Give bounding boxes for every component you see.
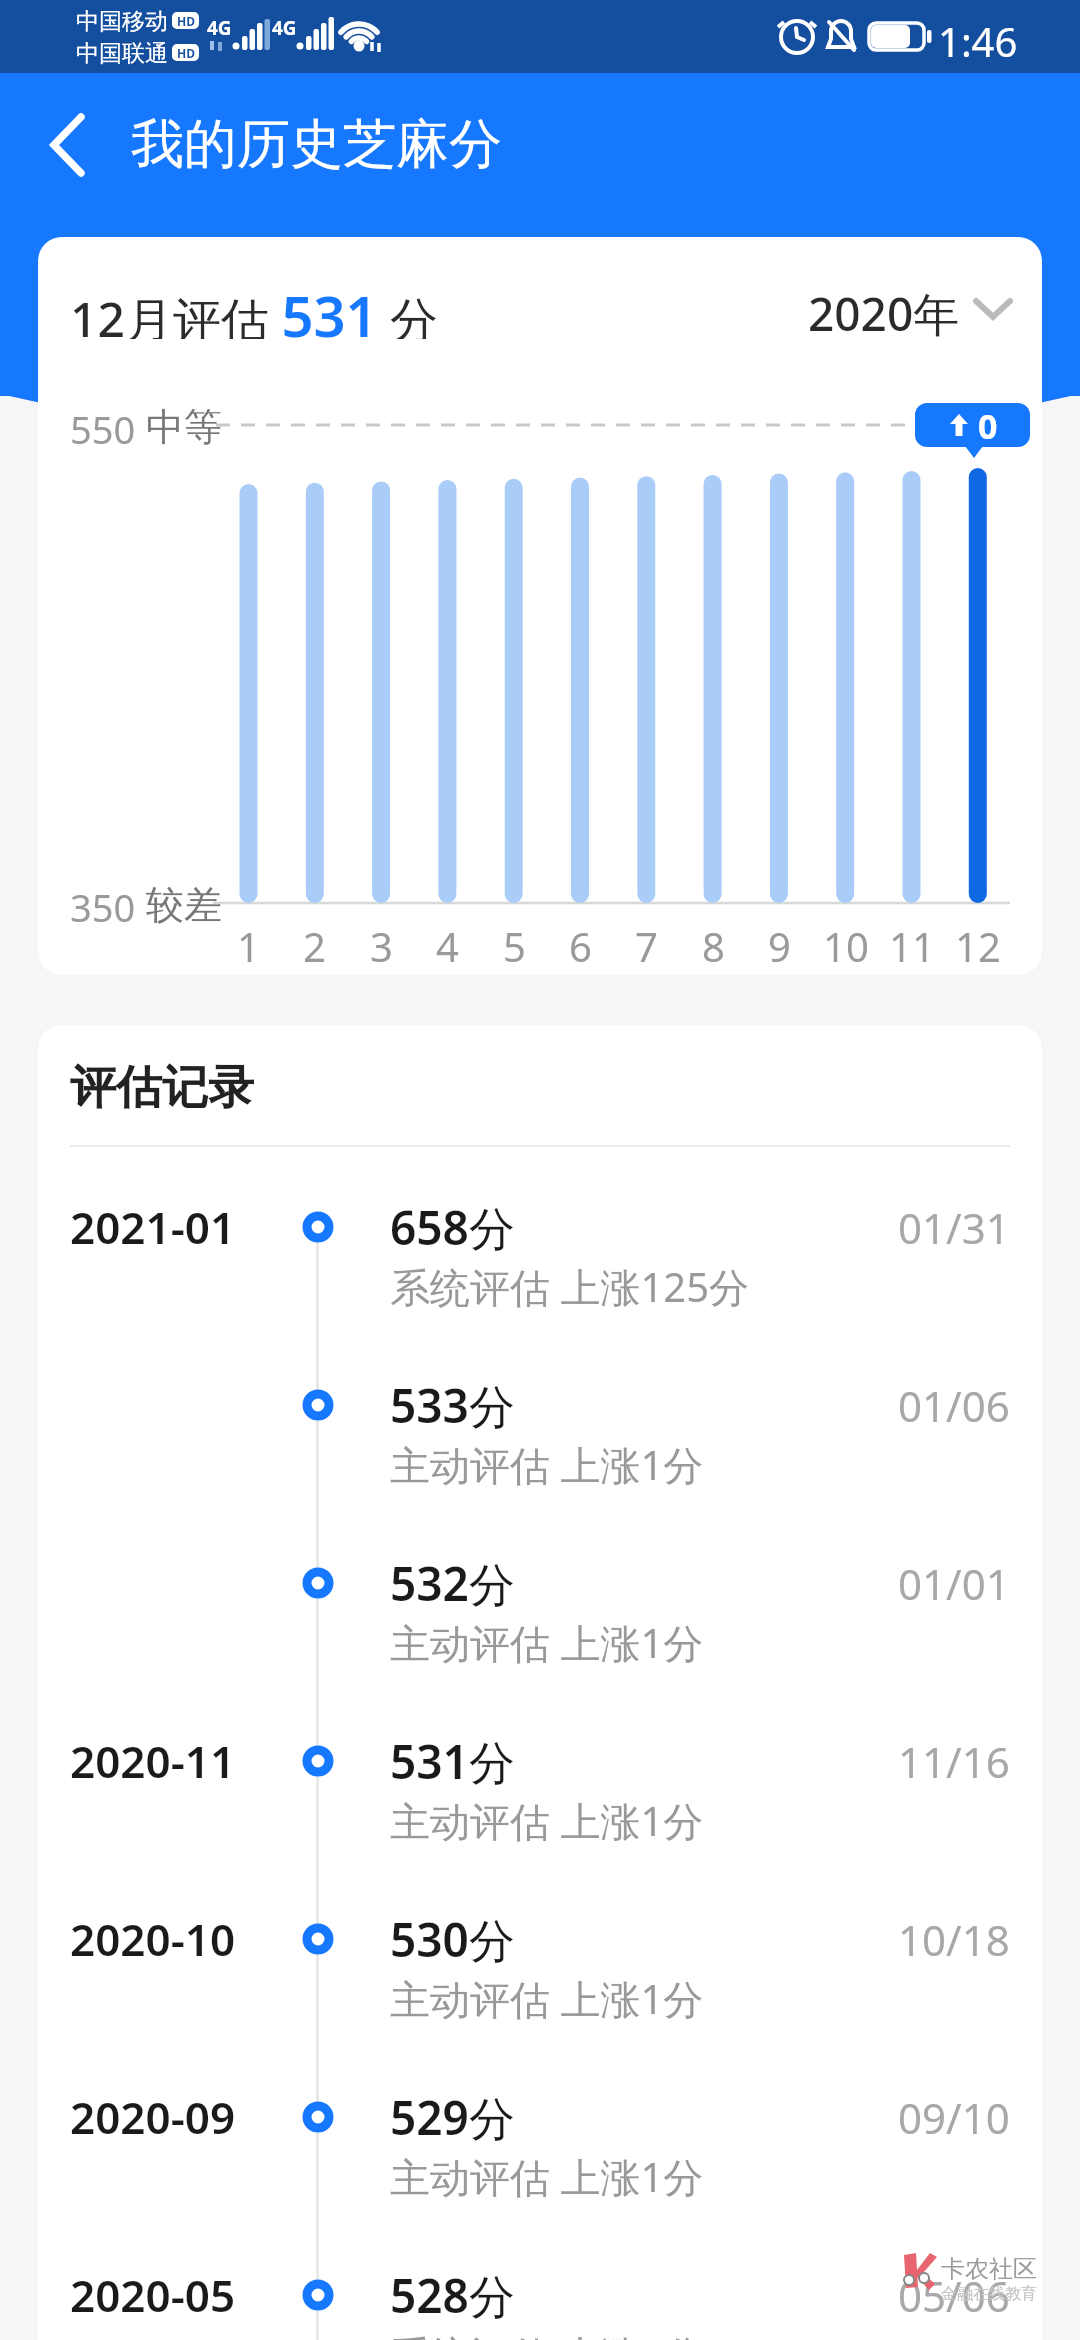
staticText: 主动评估 上涨1分 bbox=[390, 1793, 704, 1845]
staticText: 6 bbox=[569, 919, 592, 967]
staticText: 主动评估 上涨1分 bbox=[390, 1615, 704, 1667]
staticText: 3 bbox=[370, 919, 393, 967]
staticText: 中国联通 bbox=[76, 39, 168, 67]
staticText: 531分 bbox=[390, 1730, 515, 1792]
staticText: 550 bbox=[70, 403, 146, 447]
staticText: 10 bbox=[823, 919, 869, 967]
button[interactable]: 2020-05 bbox=[38, 2215, 1042, 2340]
staticText: 系统评估 上涨1分 bbox=[390, 2327, 704, 2340]
staticText: 05/06 bbox=[898, 2267, 1010, 2323]
staticText: 中等 bbox=[146, 403, 222, 447]
staticText: 8 bbox=[702, 919, 725, 967]
staticText: 2020-11 bbox=[70, 1731, 236, 1791]
staticText: 09/10 bbox=[898, 2089, 1010, 2145]
staticText: 2 bbox=[303, 919, 326, 967]
staticText: 5 bbox=[503, 919, 526, 967]
staticText: 01/06 bbox=[898, 1377, 1010, 1433]
staticText: HD bbox=[177, 45, 195, 61]
button[interactable] bbox=[0, 73, 120, 193]
staticText: 主动评估 上涨1分 bbox=[390, 2149, 704, 2201]
staticText: 532分 bbox=[390, 1552, 515, 1614]
staticText: 系统评估 上涨125分 bbox=[390, 1259, 750, 1311]
staticText: 中国移动 bbox=[76, 7, 168, 35]
staticText: 较差 bbox=[146, 881, 222, 925]
staticText: 评估记录 bbox=[70, 1059, 254, 1113]
staticText: 2020-09 bbox=[70, 2087, 236, 2147]
staticText: 11/16 bbox=[898, 1733, 1010, 1789]
staticText: 4G bbox=[207, 15, 232, 37]
button[interactable]: 2020-09 bbox=[38, 2037, 1042, 2207]
staticText: 2020-05 bbox=[70, 2265, 236, 2325]
staticText: 4G bbox=[272, 15, 297, 37]
staticText: 1:46 bbox=[938, 14, 1018, 60]
staticText: 01/31 bbox=[898, 1199, 1010, 1255]
staticText: 7 bbox=[635, 919, 658, 967]
button[interactable]: 533分 bbox=[38, 1325, 1042, 1495]
staticText: 9 bbox=[768, 919, 791, 967]
staticText: 12 bbox=[955, 919, 1001, 967]
staticText: 01/01 bbox=[898, 1555, 1010, 1611]
staticText: 658分 bbox=[390, 1196, 515, 1258]
staticText: 我的历史芝麻分 bbox=[131, 111, 502, 177]
staticText: 12月评估 531 分 bbox=[70, 277, 438, 339]
button[interactable]: 532分 bbox=[38, 1503, 1042, 1673]
button[interactable]: 2020-10 bbox=[38, 1859, 1042, 2029]
staticText: 350 bbox=[70, 881, 146, 925]
staticText: 卡农社区 bbox=[941, 2254, 1037, 2284]
staticText: 4 bbox=[436, 919, 459, 967]
staticText: 2020-10 bbox=[70, 1909, 236, 1969]
staticText: HD bbox=[177, 13, 195, 29]
staticText: 1 bbox=[237, 919, 260, 967]
button[interactable]: 2021-01 bbox=[38, 1147, 1042, 1317]
staticText: 主动评估 上涨1分 bbox=[390, 1437, 704, 1489]
staticText: 528分 bbox=[390, 2264, 515, 2326]
staticText: 2021-01 bbox=[70, 1197, 236, 1257]
staticText: 0 bbox=[978, 403, 998, 447]
staticText: 10/18 bbox=[898, 1911, 1010, 1967]
staticText: 530分 bbox=[390, 1908, 515, 1970]
staticText: 533分 bbox=[390, 1374, 515, 1436]
staticText: 主动评估 上涨1分 bbox=[390, 1971, 704, 2023]
staticText: 11 bbox=[889, 919, 935, 967]
button[interactable]: 2020年 bbox=[808, 282, 1014, 338]
staticText: 529分 bbox=[390, 2086, 515, 2148]
staticText: 金融在线教育 bbox=[941, 2284, 1037, 2304]
button[interactable]: 2020-11 bbox=[38, 1681, 1042, 1851]
staticText: 2020年 bbox=[808, 282, 960, 338]
